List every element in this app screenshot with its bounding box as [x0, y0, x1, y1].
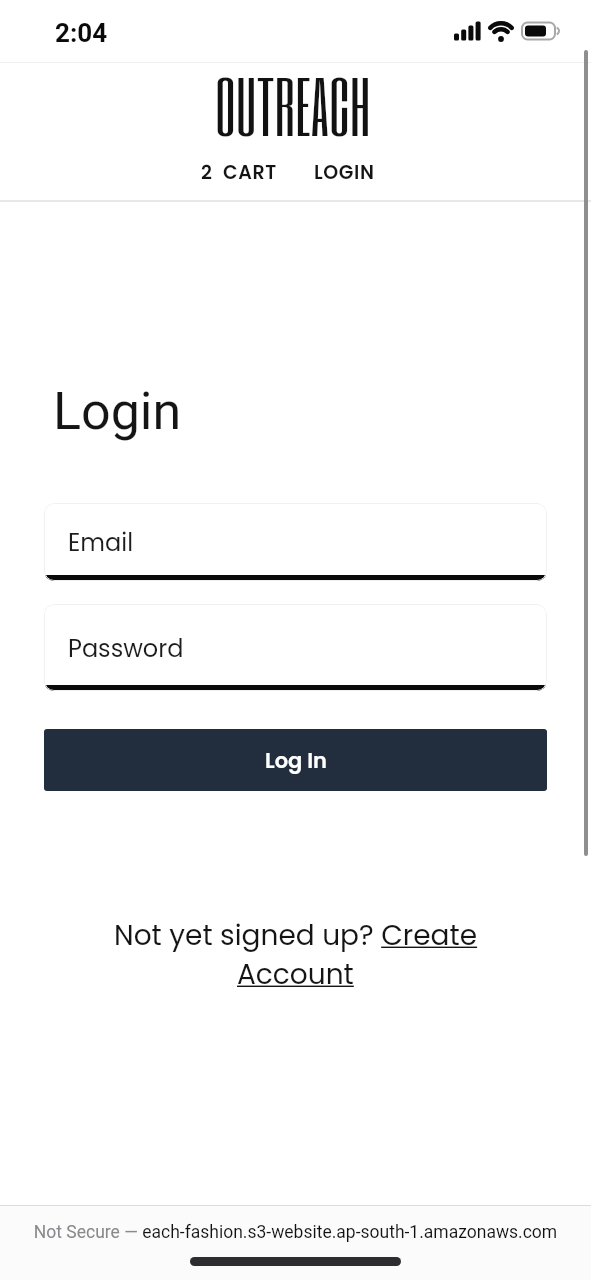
button[interactable]: Log In: [44, 729, 547, 791]
staticText: Not Secure — each-fashion.s3-website.ap-…: [0, 1222, 591, 1243]
staticText: Email: [68, 526, 134, 560]
button[interactable]: LOGIN: [314, 159, 375, 186]
staticText: 2: [201, 159, 213, 186]
staticText: Login: [53, 381, 182, 442]
staticText: Password: [68, 632, 184, 666]
button[interactable]: Not yet signed up? Create: [0, 916, 591, 994]
staticText: Not yet signed up? Create: [114, 916, 478, 955]
staticText: OUTREACH: [215, 61, 371, 150]
staticText: 2:04: [55, 18, 108, 48]
button[interactable]: Password: [44, 604, 547, 691]
staticText: CART: [223, 159, 277, 186]
button[interactable]: 2: [201, 159, 277, 186]
staticText: Log In: [265, 746, 327, 775]
staticText: Account: [237, 955, 354, 994]
staticText: LOGIN: [314, 159, 375, 186]
button[interactable]: Email: [44, 503, 547, 581]
